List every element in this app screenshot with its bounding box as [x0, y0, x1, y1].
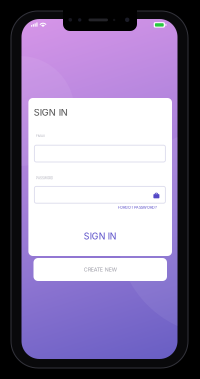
staticText: SIGN IN: [84, 231, 117, 241]
staticText: EMAIL: [36, 135, 46, 138]
button[interactable]: CREATE NEW: [33, 258, 167, 281]
button[interactable]: SIGN IN: [28, 227, 172, 245]
button[interactable]: FORGOT PASSWORD?: [101, 204, 157, 210]
staticText: SIGN IN: [34, 107, 68, 118]
staticText: FORGOT PASSWORD?: [118, 205, 157, 210]
staticText: PASSWORD: [36, 176, 53, 180]
staticText: CREATE NEW: [84, 266, 117, 273]
